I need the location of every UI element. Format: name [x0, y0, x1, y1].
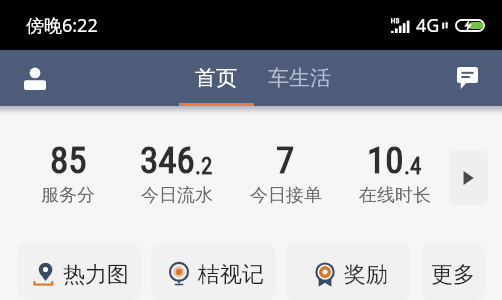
button[interactable]: 车生活: [256, 50, 342, 106]
staticText: 今日接单: [250, 184, 322, 207]
button[interactable]: 热力图: [17, 243, 141, 300]
staticText: 今日流水: [141, 184, 213, 207]
staticText: 7: [276, 139, 295, 182]
staticText: 奖励: [344, 261, 388, 289]
staticText: 车生活: [268, 65, 331, 91]
staticText: 85: [50, 139, 87, 182]
button[interactable]: 更多: [421, 243, 485, 300]
button[interactable]: 7: [231, 136, 340, 207]
staticText: 傍晚6:22: [26, 13, 98, 38]
button[interactable]: 首页: [178, 50, 253, 106]
button[interactable]: Profile: [12, 55, 58, 101]
staticText: 更多: [431, 261, 475, 289]
staticText: 首页: [195, 65, 237, 91]
staticText: 在线时长: [359, 184, 431, 207]
staticText: .2: [195, 153, 213, 180]
button[interactable]: Messages: [444, 55, 490, 101]
button[interactable]: 346: [122, 136, 231, 207]
staticText: .4: [404, 153, 422, 180]
button[interactable]: 85: [14, 136, 122, 207]
staticText: 热力图: [63, 261, 129, 289]
staticText: 10: [367, 139, 404, 182]
staticText: 4G: [416, 13, 440, 38]
staticText: 346: [140, 139, 195, 182]
button[interactable]: 10: [340, 136, 449, 207]
staticText: 服务分: [41, 184, 95, 207]
button[interactable]: 奖励: [286, 243, 411, 300]
staticText: 桔视记: [198, 261, 264, 289]
button[interactable]: 桔视记: [151, 243, 276, 300]
button[interactable]: More stats: [449, 150, 488, 205]
